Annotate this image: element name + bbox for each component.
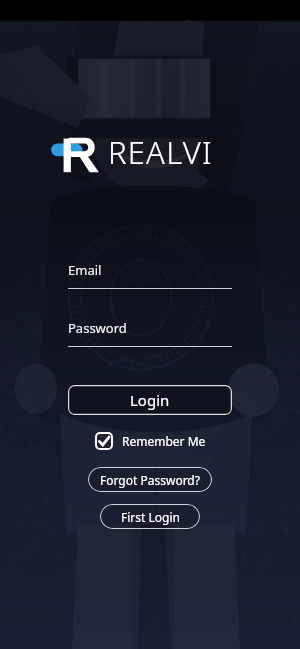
staticText: REALVI — [108, 131, 213, 173]
staticText: Forgot Password? — [100, 472, 200, 488]
button[interactable]: First Login — [100, 504, 200, 529]
staticText: Email — [68, 261, 102, 279]
staticText: Password — [68, 319, 127, 337]
staticText: Login — [130, 390, 170, 410]
staticText: Remember Me — [122, 433, 206, 449]
button[interactable]: Remember Me — [95, 432, 206, 450]
button[interactable]: Login — [68, 385, 232, 415]
staticText: First Login — [121, 509, 180, 525]
button[interactable]: Forgot Password? — [88, 467, 212, 492]
